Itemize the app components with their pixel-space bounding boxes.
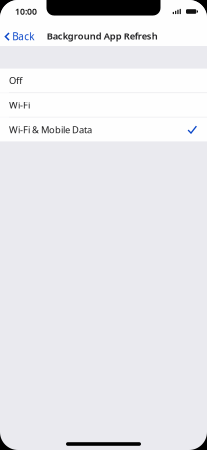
button[interactable]: Off xyxy=(0,69,207,92)
staticText: Background App Refresh xyxy=(47,29,158,42)
button[interactable]: Back xyxy=(0,23,40,46)
staticText: Off xyxy=(9,74,22,87)
button[interactable]: Wi-Fi xyxy=(0,93,207,117)
staticText: Back xyxy=(12,30,34,43)
staticText: 10:00 xyxy=(15,6,37,17)
staticText: Wi-Fi & Mobile Data xyxy=(9,123,92,136)
staticText: Wi-Fi xyxy=(9,99,30,111)
button[interactable]: Wi-Fi & Mobile Data xyxy=(0,118,207,141)
